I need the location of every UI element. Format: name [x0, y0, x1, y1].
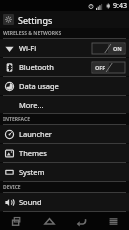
- button[interactable]: Sound: [0, 193, 129, 211]
- staticText: Launcher: [19, 129, 125, 139]
- button[interactable]: Menu: [97, 212, 129, 230]
- button[interactable]: More...: [0, 96, 129, 113]
- staticText: System: [19, 167, 125, 177]
- button[interactable]: Back: [65, 212, 97, 230]
- button[interactable]: Home: [33, 212, 65, 230]
- button[interactable]: Data usage: [0, 77, 129, 95]
- button[interactable]: System: [0, 163, 129, 181]
- staticText: WIRELESS & NETWORKS: [3, 30, 62, 37]
- staticText: Themes: [19, 148, 125, 158]
- button[interactable]: Bluetooth: [0, 58, 129, 76]
- staticText: ON: [113, 45, 122, 52]
- button[interactable]: Themes: [0, 144, 129, 162]
- staticText: INTERFACE: [3, 116, 30, 123]
- staticText: DEVICE: [3, 184, 21, 191]
- button[interactable]: Off: [92, 62, 125, 73]
- staticText: OFF: [95, 64, 106, 71]
- button[interactable]: Recent apps: [0, 212, 33, 230]
- button[interactable]: Settings: [0, 11, 129, 28]
- staticText: Sound: [19, 197, 125, 207]
- staticText: Data usage: [19, 81, 125, 91]
- staticText: Bluetooth: [19, 62, 92, 72]
- button[interactable]: Wi-Fi: [0, 39, 129, 57]
- button[interactable]: Launcher: [0, 125, 129, 143]
- staticText: Settings: [18, 14, 53, 26]
- staticText: 9:43: [113, 1, 127, 11]
- staticText: More...: [19, 100, 44, 110]
- staticText: Wi-Fi: [19, 43, 92, 53]
- button[interactable]: On: [92, 43, 125, 54]
